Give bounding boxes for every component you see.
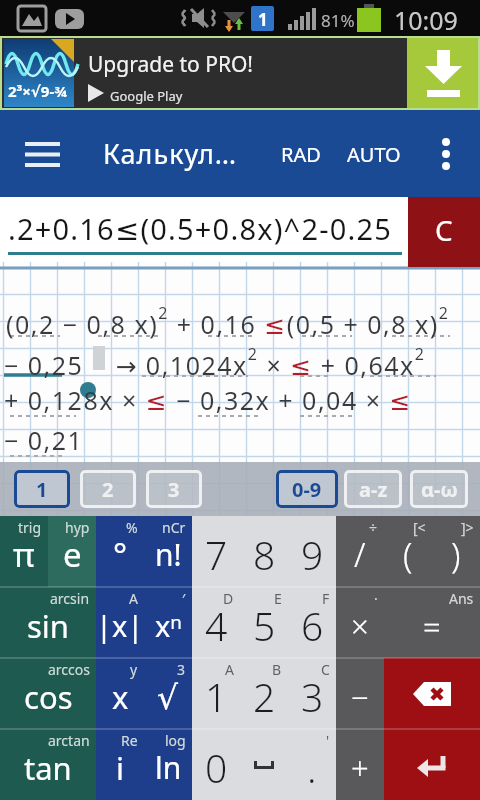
button[interactable]: arctan (0, 729, 96, 800)
staticText: C (435, 211, 453, 249)
button[interactable]: 9 (288, 516, 336, 587)
staticText: A (129, 589, 138, 608)
button[interactable]: 0 (192, 729, 240, 800)
staticText: C (321, 660, 330, 679)
button[interactable]: y (96, 658, 144, 729)
button[interactable]: E (240, 587, 288, 658)
button[interactable]: C (288, 658, 336, 729)
staticText: ′ (182, 589, 186, 608)
staticText: 3 (168, 476, 180, 503)
staticText: Re (121, 731, 138, 750)
button[interactable]: + (336, 729, 384, 800)
staticText: F (322, 589, 330, 608)
button[interactable] (428, 134, 464, 174)
button[interactable]: 1 (14, 470, 70, 508)
staticText: Upgrade to PRO! (88, 50, 253, 79)
button[interactable]: RAD (281, 141, 321, 168)
button[interactable] (240, 729, 288, 800)
staticText: 4 (205, 599, 228, 652)
button[interactable]: hyp (48, 516, 96, 587)
button[interactable]: 0-9 (276, 470, 338, 508)
button[interactable]: · (336, 587, 384, 658)
staticText: 9 (301, 528, 324, 581)
staticText: 6 (301, 599, 324, 652)
button[interactable] (384, 729, 480, 800)
staticText: × (351, 605, 369, 647)
button[interactable]: A (96, 587, 144, 658)
staticText: α-ω (421, 476, 458, 503)
staticText: log (165, 731, 186, 750)
button[interactable]: 3 (146, 470, 202, 508)
button[interactable]: ' (288, 729, 336, 800)
staticText: % (126, 518, 138, 537)
button[interactable]: AUTO (347, 141, 401, 168)
staticText: trig (18, 518, 42, 537)
button[interactable]: 3 (144, 658, 192, 729)
staticText: − 0,21 (4, 423, 84, 457)
staticText: ( (403, 532, 413, 578)
button[interactable]: 2 (80, 470, 136, 508)
button[interactable]: ]> (432, 516, 480, 587)
staticText: 8 (253, 528, 276, 581)
staticText: ÷ (369, 518, 378, 537)
button[interactable]: 7 (192, 516, 240, 587)
staticText: ' (326, 731, 330, 750)
button[interactable]: log (144, 729, 192, 800)
staticText: Ans (449, 589, 474, 608)
staticText: 0 (205, 741, 228, 794)
staticText: xⁿ (155, 606, 182, 645)
staticText: n! (155, 534, 182, 575)
button[interactable]: C (408, 197, 480, 262)
staticText: + (351, 747, 369, 789)
button[interactable]: arccos (0, 658, 96, 729)
button[interactable]: Re (96, 729, 144, 800)
button[interactable]: 8 (240, 516, 288, 587)
button[interactable]: % (96, 516, 144, 587)
staticText: |x| (96, 606, 144, 645)
staticText: 2 (102, 476, 114, 503)
button[interactable]: 2³×√9-¾ (0, 36, 480, 110)
staticText: + 0,128x × ≤ − 0,32x + 0,04 × ≤ (4, 383, 412, 417)
button[interactable]: [< (384, 516, 432, 587)
staticText: 7 (205, 528, 228, 581)
staticText: √ (157, 678, 179, 716)
button[interactable]: Ans (384, 587, 480, 658)
staticText: sin (27, 605, 70, 647)
staticText: i (116, 747, 124, 789)
button[interactable]: ÷ (336, 516, 384, 587)
staticText: arctan (48, 731, 90, 750)
staticText: 3 (301, 670, 324, 723)
staticText: 3 (177, 660, 186, 679)
button[interactable]: arcsin (0, 587, 96, 658)
staticText: ]> (461, 518, 474, 537)
staticText: 5 (253, 599, 276, 652)
button[interactable]: nCr (144, 516, 192, 587)
staticText: ) (451, 532, 461, 578)
staticText: · (374, 589, 378, 608)
button[interactable]: trig (0, 516, 48, 587)
button[interactable]: B (240, 658, 288, 729)
button[interactable] (407, 38, 480, 108)
staticText: − (351, 676, 369, 718)
staticText: / (354, 532, 366, 577)
staticText: ° (113, 532, 128, 577)
staticText: arcsin (50, 589, 90, 608)
button[interactable] (384, 658, 480, 729)
staticText: D (223, 589, 234, 608)
staticText: hyp (65, 518, 90, 537)
button[interactable]: − (336, 658, 384, 729)
button[interactable]: A (192, 658, 240, 729)
staticText: a-z (359, 476, 388, 503)
staticText: .2+0.16≤(0.5+0.8x)^2-0.25 (8, 209, 393, 248)
button[interactable]: F (288, 587, 336, 658)
button[interactable]: a-z (344, 470, 402, 508)
button[interactable] (18, 135, 66, 173)
staticText: E (274, 589, 282, 608)
staticText: e (63, 532, 82, 577)
button[interactable]: ′ (144, 587, 192, 658)
button[interactable]: α-ω (410, 470, 468, 508)
staticText: 1 (258, 8, 268, 31)
staticText: (0,2 − 0,8 x)2 + 0,16 ≤(0,5 + 0,8 x)2 (6, 302, 450, 342)
staticText: 10:09 (394, 3, 458, 37)
button[interactable]: D (192, 587, 240, 658)
